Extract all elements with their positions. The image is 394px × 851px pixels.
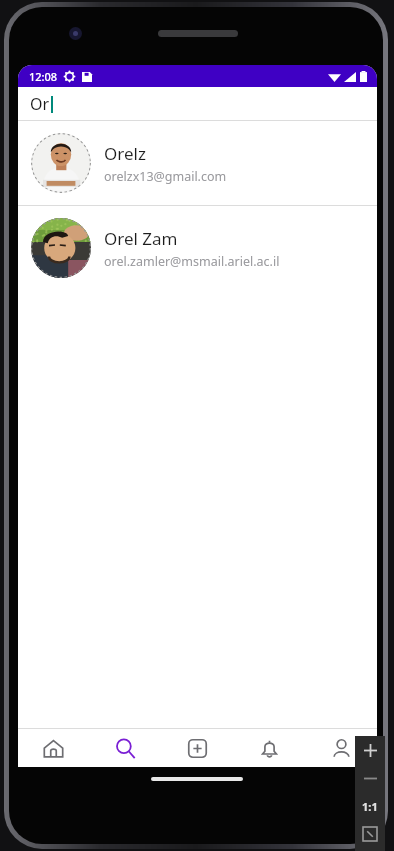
staticText: Orel Zam [104, 227, 178, 250]
button[interactable]: Or [18, 87, 377, 120]
button[interactable]: Search [89, 729, 161, 767]
staticText: orelzx13@gmail.com [104, 168, 227, 185]
button[interactable]: Orel Zam [18, 206, 377, 290]
button[interactable]: Notifications [233, 729, 305, 767]
staticText: Or [30, 93, 50, 115]
button[interactable]: Zoom in [355, 736, 385, 764]
staticText: 12:08 [29, 69, 58, 84]
staticText: 1:1 [362, 799, 378, 814]
button[interactable]: Orelz [18, 121, 377, 205]
button[interactable]: 1:1 [355, 792, 385, 820]
button[interactable]: Home [18, 729, 89, 767]
staticText: Orelz [104, 142, 146, 165]
button[interactable]: Add post [161, 729, 233, 767]
button[interactable]: Fit to screen [355, 820, 385, 848]
button[interactable]: Profile [305, 729, 377, 767]
button[interactable]: Zoom out [355, 764, 385, 792]
staticText: orel.zamler@msmail.ariel.ac.il [104, 253, 280, 270]
